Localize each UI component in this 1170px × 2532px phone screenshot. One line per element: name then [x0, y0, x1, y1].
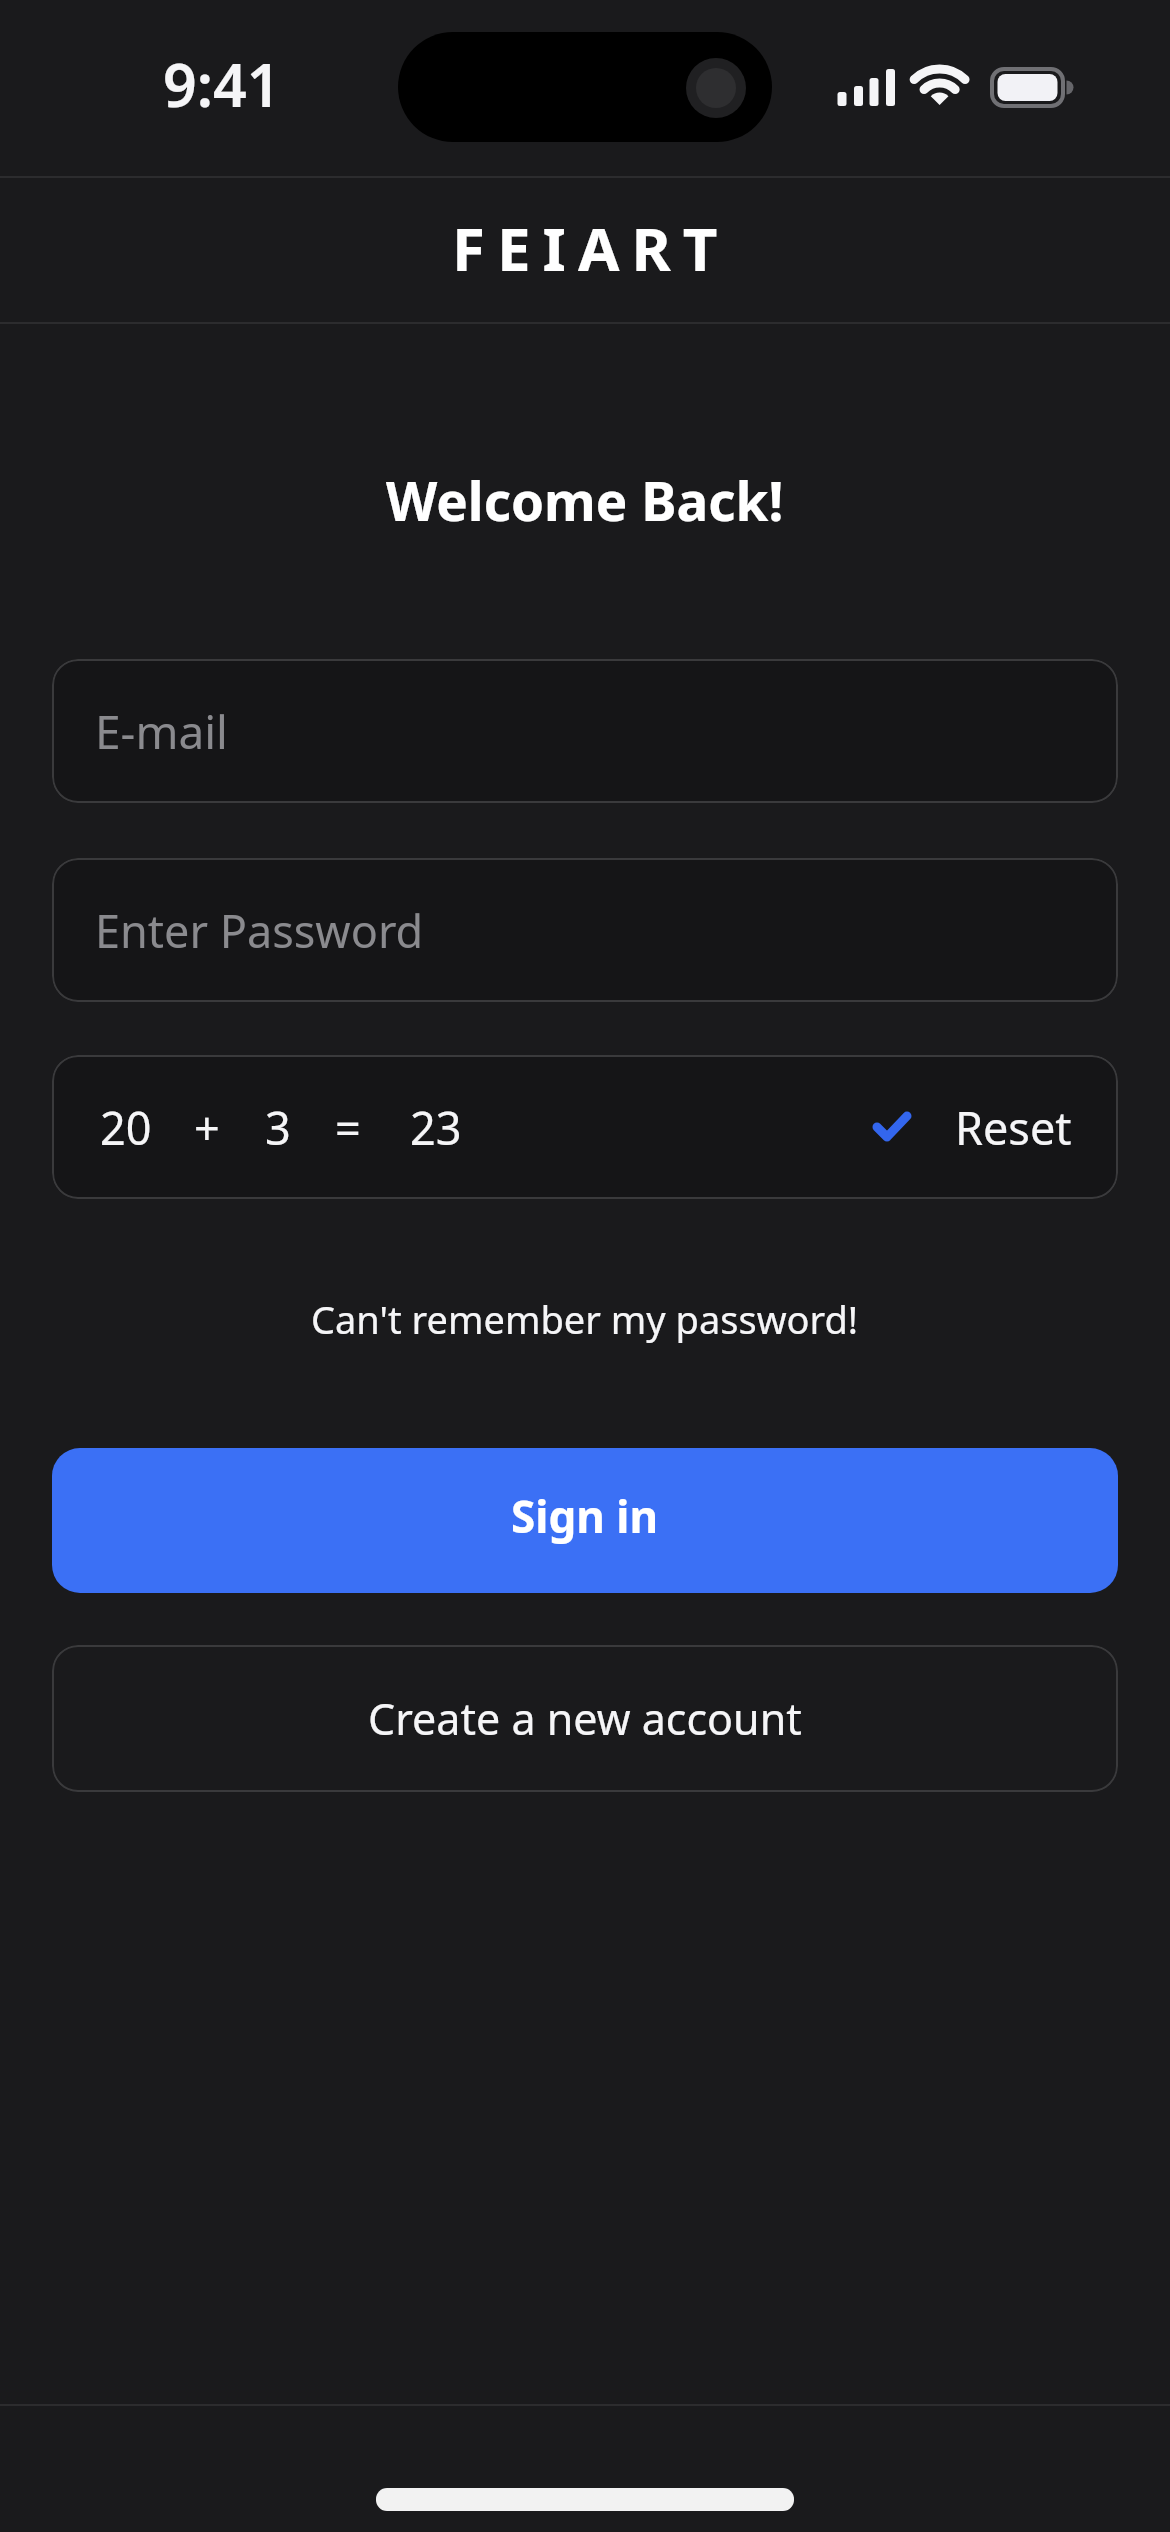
staticText: Create a new account [368, 1689, 802, 1748]
staticText: Welcome Back! [386, 464, 784, 536]
button[interactable]: Enter Password [52, 858, 1118, 1002]
staticText: Can't remember my password! [311, 1293, 859, 1345]
staticText: FEIART [452, 207, 730, 289]
staticText: E-mail [95, 700, 228, 763]
button[interactable]: Reset [955, 1097, 1072, 1158]
button[interactable]: Create a new account [52, 1645, 1118, 1792]
button[interactable]: Can't remember my password! [311, 1293, 859, 1345]
staticText: 23 [410, 1097, 462, 1158]
staticText: Enter Password [95, 900, 424, 961]
staticText: + [194, 1097, 220, 1158]
staticText: Sign in [511, 1486, 659, 1546]
staticText: 20 [100, 1097, 152, 1158]
button[interactable]: E-mail [52, 659, 1118, 803]
button[interactable]: Sign in [52, 1448, 1118, 1593]
staticText: 9:41 [163, 44, 281, 124]
staticText: 3 [265, 1097, 291, 1158]
staticText: = [335, 1097, 361, 1158]
staticText: Reset [955, 1097, 1072, 1158]
